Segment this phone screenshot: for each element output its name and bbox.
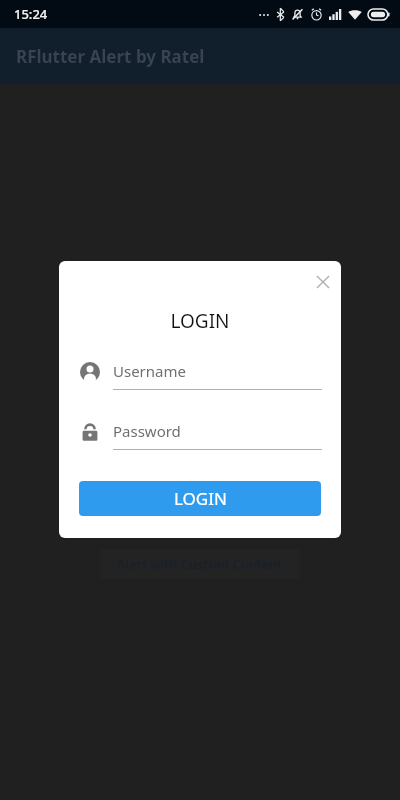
staticText: LOGIN: [174, 487, 227, 510]
button[interactable]: LOGIN: [79, 481, 321, 516]
staticText: RFlutter Alert by Ratel: [16, 45, 205, 68]
staticText: LOGIN: [59, 308, 341, 334]
button[interactable]: Close: [306, 265, 340, 299]
staticText: Alert with Custom Content: [117, 555, 283, 573]
staticText: Password: [113, 421, 181, 441]
staticText: 15:24: [14, 5, 48, 23]
staticText: Username: [113, 361, 186, 381]
